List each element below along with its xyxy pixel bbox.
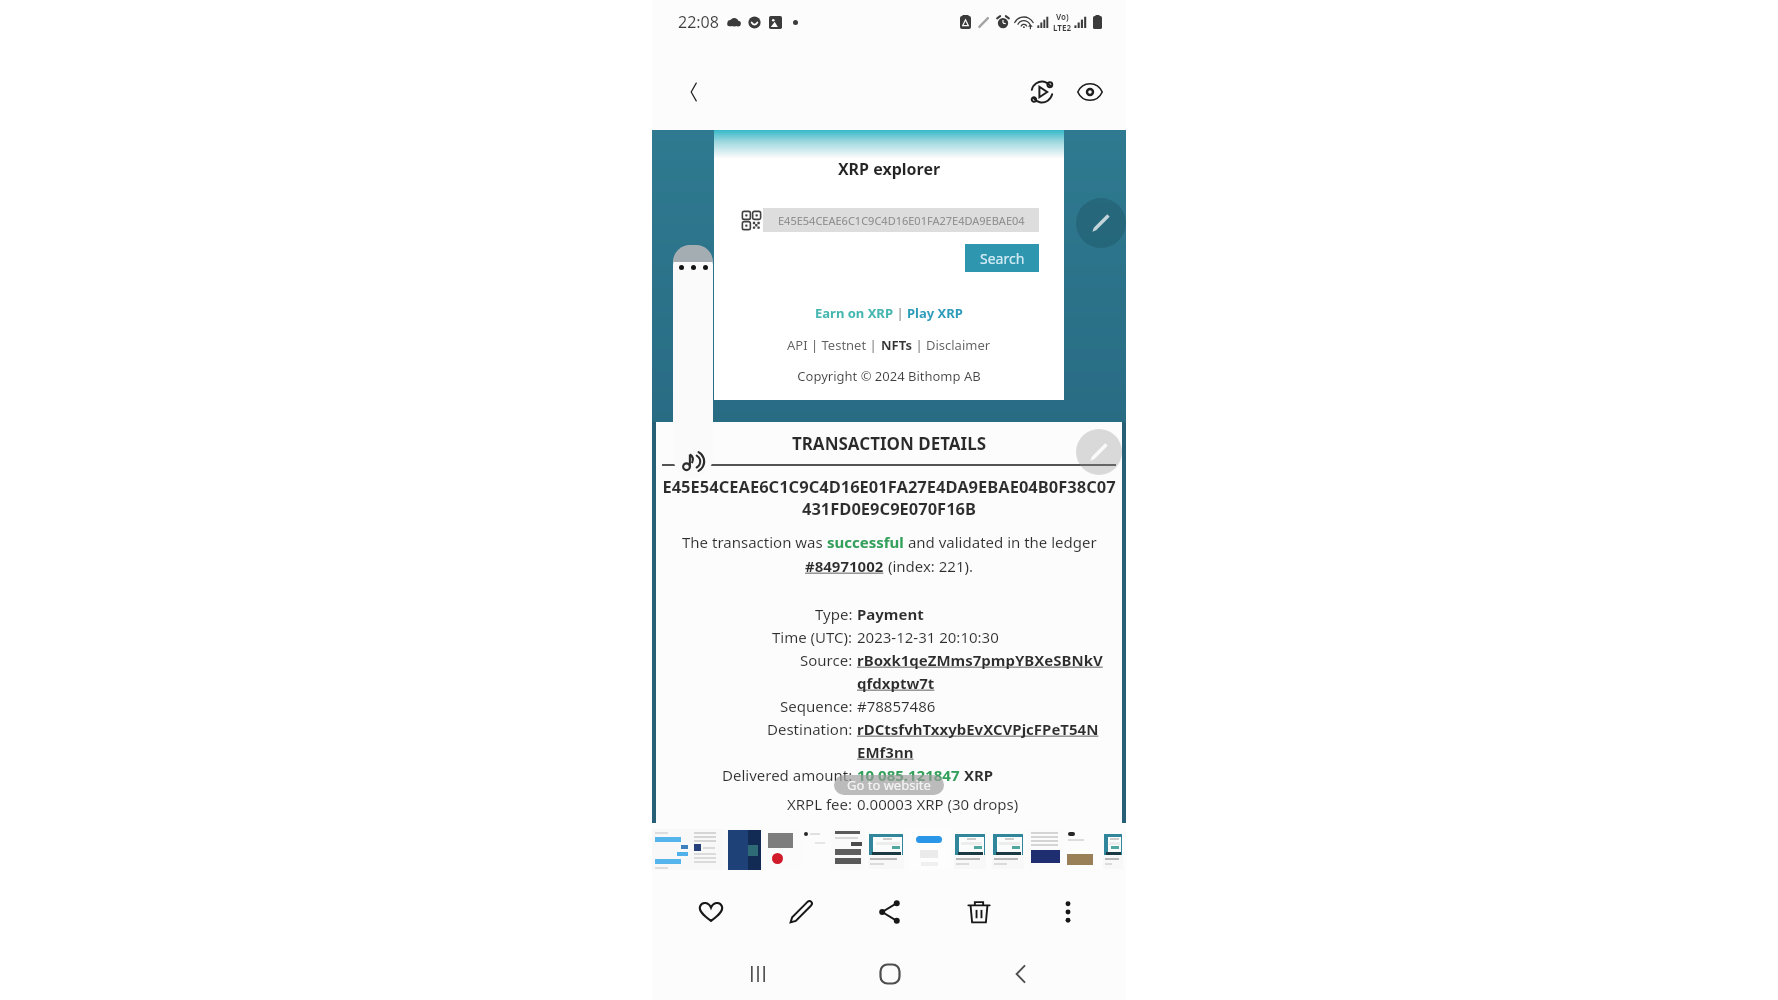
button[interactable] bbox=[989, 829, 1027, 870]
button[interactable] bbox=[691, 829, 723, 870]
button[interactable]: Recents bbox=[692, 941, 824, 1000]
staticText: and validated in the ledger bbox=[904, 532, 1097, 552]
staticText: Payment bbox=[857, 604, 924, 624]
staticText: (index: 221). bbox=[884, 556, 974, 576]
button[interactable]: Delete bbox=[934, 877, 1023, 941]
button[interactable] bbox=[652, 829, 691, 870]
staticText: XRP explorer bbox=[714, 158, 1064, 180]
staticText: Delivered amount: bbox=[722, 765, 853, 785]
staticText: 0.00003 XRP (30 drops) bbox=[857, 794, 1019, 814]
button[interactable]: Favorite bbox=[666, 877, 756, 941]
staticText: Earn on XRP bbox=[815, 304, 893, 322]
button[interactable] bbox=[1027, 829, 1064, 870]
staticText: XRP bbox=[960, 765, 994, 785]
staticText: E45E54CEAE6C1C9C4D16E01FA27E4DA9EBAE04B0… bbox=[656, 475, 1122, 497]
staticText: Sequence: bbox=[780, 696, 853, 716]
staticText: Go to website bbox=[847, 776, 931, 794]
staticText: qfdxptw7t bbox=[857, 673, 935, 693]
button[interactable]: Go to website bbox=[834, 775, 944, 795]
button[interactable]: More options bbox=[1023, 877, 1112, 941]
staticText: TRANSACTION DETAILS bbox=[656, 432, 1122, 455]
button[interactable] bbox=[801, 829, 831, 870]
staticText: Source: bbox=[800, 650, 853, 670]
button[interactable] bbox=[1064, 829, 1100, 870]
staticText: successful bbox=[827, 532, 904, 552]
staticText: 431FD0E9C9E070F16B bbox=[656, 497, 1122, 519]
staticText: EMf3nn bbox=[857, 742, 914, 762]
staticText: 2023-12-31 20:10:30 bbox=[857, 627, 999, 647]
button[interactable]: Back bbox=[672, 70, 716, 114]
staticText: 22:08 bbox=[678, 11, 719, 33]
button[interactable] bbox=[907, 829, 951, 870]
staticText: XRPL fee: bbox=[787, 794, 853, 814]
staticText: Destination: bbox=[767, 719, 853, 739]
button[interactable]: Home bbox=[824, 941, 955, 1000]
staticText: Type: bbox=[815, 604, 853, 624]
staticText: Play XRP bbox=[907, 304, 963, 322]
staticText: #84971002 bbox=[805, 556, 884, 576]
staticText: rBoxk1qeZMms7pmpYBXeSBNkV bbox=[857, 650, 1103, 670]
button[interactable] bbox=[1100, 829, 1126, 870]
button[interactable]: Edge panel bbox=[673, 245, 713, 477]
button[interactable] bbox=[723, 829, 763, 870]
staticText: Vo) bbox=[1056, 11, 1069, 22]
button[interactable]: Motion photo bbox=[1020, 70, 1064, 114]
button[interactable]: Edit photo bbox=[1076, 429, 1122, 475]
staticText: E45E54CEAE6C1C9C4D16E01FA27E4DA9EBAE04 bbox=[778, 213, 1025, 228]
staticText: The transaction was bbox=[682, 532, 827, 552]
button[interactable]: Search bbox=[965, 244, 1039, 272]
button[interactable] bbox=[951, 829, 989, 870]
staticText: API | Testnet | bbox=[787, 336, 881, 354]
staticText: Copyright © 2024 Bithomp AB bbox=[714, 367, 1064, 385]
button[interactable]: Edit bbox=[1076, 198, 1126, 248]
staticText: LTE2 bbox=[1053, 22, 1071, 33]
button[interactable]: View details bbox=[1068, 70, 1112, 114]
button[interactable]: Back bbox=[955, 941, 1086, 1000]
staticText: rDCtsfvhTxxybEvXCVPjcFPeT54N bbox=[857, 719, 1099, 739]
button[interactable]: Share bbox=[845, 877, 934, 941]
staticText: #78857486 bbox=[857, 696, 936, 716]
button[interactable] bbox=[763, 829, 801, 870]
staticText: Search bbox=[980, 249, 1025, 268]
button[interactable] bbox=[831, 829, 865, 870]
staticText: | bbox=[893, 304, 907, 322]
staticText: NFTs bbox=[881, 336, 912, 354]
staticText: | Disclaimer bbox=[912, 336, 991, 354]
button[interactable]: Edit bbox=[756, 877, 845, 941]
button[interactable] bbox=[865, 829, 907, 870]
staticText: Time (UTC): bbox=[772, 627, 853, 647]
staticText: 10 085.121847 bbox=[857, 765, 960, 785]
